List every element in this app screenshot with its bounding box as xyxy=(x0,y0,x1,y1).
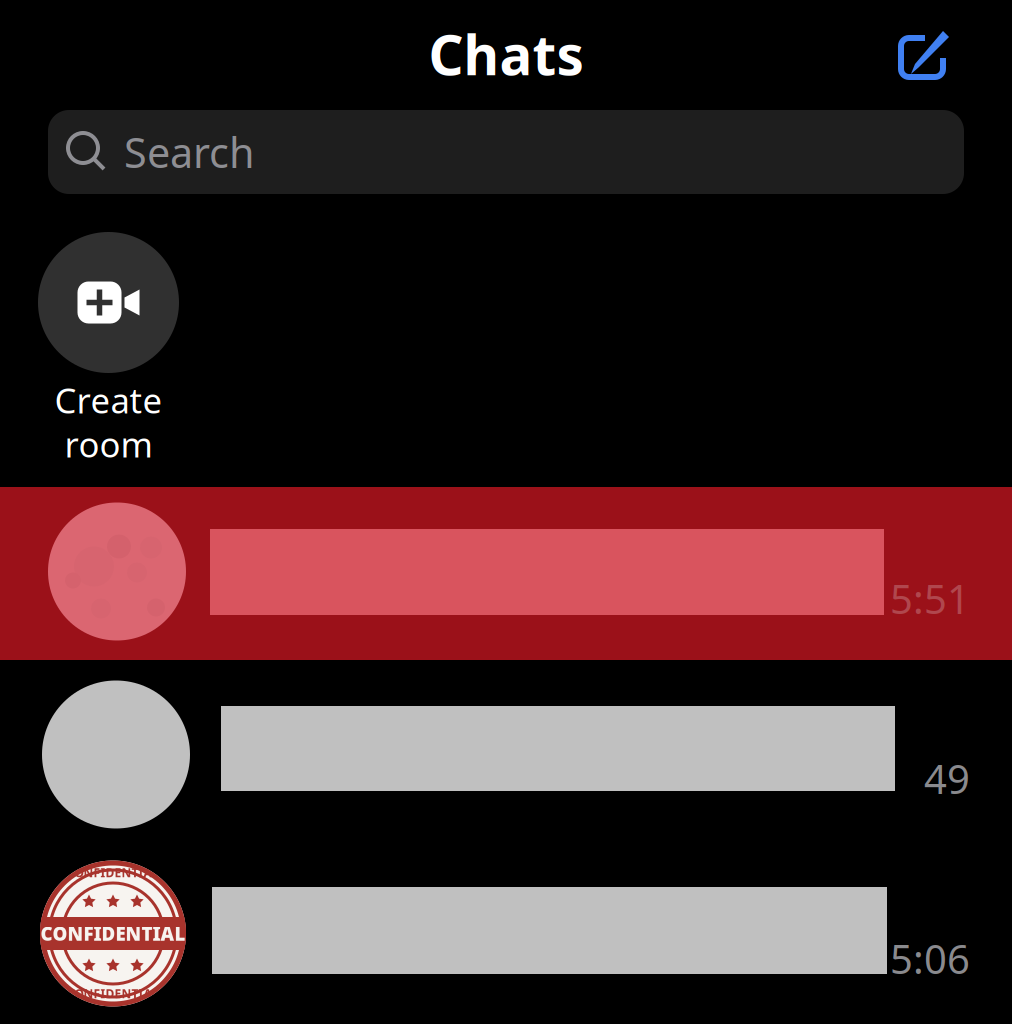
staticText: Create xyxy=(54,377,162,423)
button[interactable]: CONFIDENTIAL xyxy=(0,841,1012,1022)
staticText: 49 xyxy=(924,752,970,805)
staticText: Search xyxy=(124,125,255,179)
staticText: CONFIDENTIAL xyxy=(40,921,185,946)
staticText: room xyxy=(64,421,152,467)
button[interactable]: Create xyxy=(38,232,179,461)
staticText: CONFIDENTIAL xyxy=(67,864,158,880)
staticText: 15:51 xyxy=(867,572,970,625)
button[interactable]: New message xyxy=(871,12,1012,96)
button[interactable]: 15:51 xyxy=(0,487,1012,660)
staticText: Chats xyxy=(428,18,583,90)
button[interactable]: Search xyxy=(48,110,964,194)
staticText: 15:06 xyxy=(867,932,970,985)
staticText: CONFIDENTIAL xyxy=(67,985,158,1001)
button[interactable]: 49 xyxy=(0,660,1012,841)
